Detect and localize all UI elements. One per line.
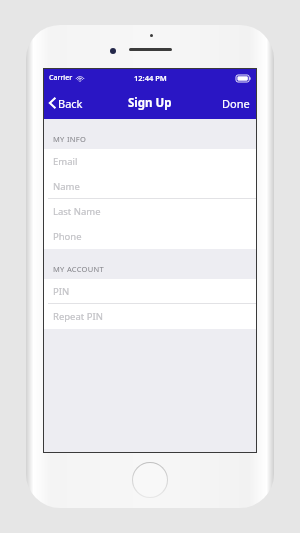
- button[interactable]: PIN: [44, 279, 256, 304]
- staticText: Phone: [53, 230, 82, 243]
- staticText: PIN: [53, 285, 70, 298]
- staticText: Email: [53, 155, 78, 168]
- staticText: MY ACCOUNT: [53, 264, 105, 274]
- button[interactable]: Home: [133, 463, 167, 497]
- staticText: MY INFO: [53, 134, 87, 144]
- button[interactable]: Back: [44, 87, 108, 119]
- staticText: Carrier: [49, 73, 73, 83]
- button[interactable]: Repeat PIN: [44, 304, 256, 329]
- staticText: Repeat PIN: [53, 310, 103, 323]
- staticText: Sign Up: [128, 95, 172, 111]
- button[interactable]: Email: [44, 149, 256, 174]
- button[interactable]: Name: [44, 174, 256, 199]
- staticText: Back: [58, 96, 83, 111]
- staticText: Name: [53, 180, 80, 193]
- staticText: Last Name: [53, 205, 101, 218]
- button[interactable]: Done: [216, 87, 256, 119]
- staticText: Done: [222, 96, 250, 111]
- button[interactable]: Phone: [44, 224, 256, 249]
- button[interactable]: Last Name: [44, 199, 256, 224]
- staticText: 12:44 PM: [134, 73, 167, 83]
